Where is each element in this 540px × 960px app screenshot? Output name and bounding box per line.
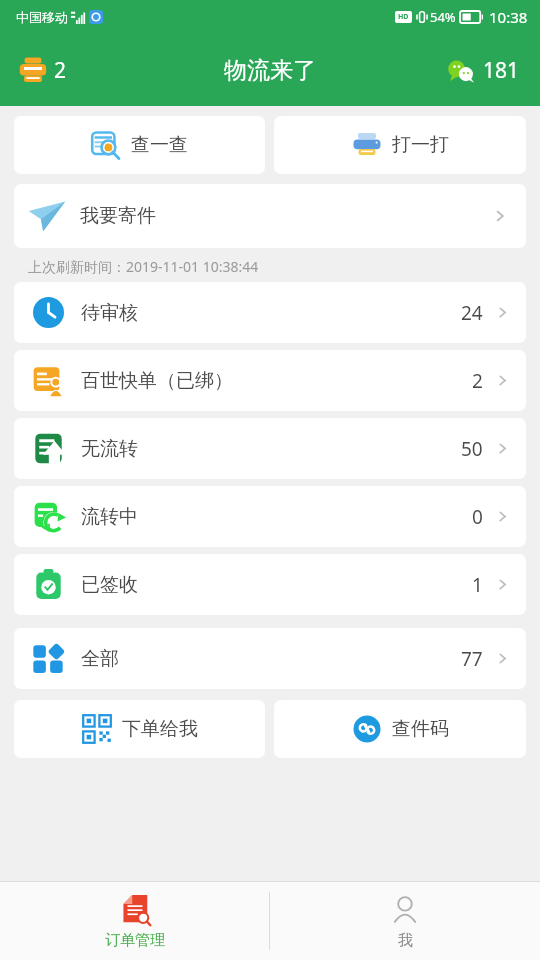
button[interactable]: 订单管理 <box>0 882 269 960</box>
staticText: 2 <box>472 368 483 394</box>
staticText: 54% <box>430 8 456 26</box>
staticText: 打一打 <box>392 133 449 157</box>
staticText: 无流转 <box>81 437 138 461</box>
button[interactable]: 全部 <box>14 628 526 689</box>
staticText: 百世快单（已绑） <box>81 369 233 393</box>
staticText: 待审核 <box>81 301 138 325</box>
staticText: 查件码 <box>392 717 449 741</box>
staticText: 181 <box>483 56 520 85</box>
staticText: 24 <box>461 300 483 326</box>
staticText: 1 <box>472 572 483 598</box>
staticText: 全部 <box>81 647 119 671</box>
staticText: 已签收 <box>81 573 138 597</box>
button[interactable]: 打一打 <box>274 116 526 174</box>
button[interactable]: 我要寄件 <box>14 184 526 248</box>
staticText: 我 <box>398 931 413 950</box>
staticText: 77 <box>461 646 483 672</box>
button[interactable]: 我 <box>270 882 540 960</box>
staticText: 订单管理 <box>105 931 165 950</box>
button[interactable]: 无流转 <box>14 418 526 479</box>
button[interactable]: 查一查 <box>14 116 265 174</box>
button[interactable]: 流转中 <box>14 486 526 547</box>
staticText: 物流来了 <box>224 56 316 85</box>
button[interactable]: 微信 <box>443 52 524 89</box>
staticText: 50 <box>461 436 483 462</box>
button[interactable]: 查件码 <box>274 700 526 758</box>
button[interactable]: 打印机 <box>14 51 71 89</box>
staticText: 我要寄件 <box>80 204 156 228</box>
staticText: 2 <box>54 56 67 85</box>
staticText: 10:38 <box>489 7 528 27</box>
button[interactable]: 下单给我 <box>14 700 265 758</box>
button[interactable]: 已签收 <box>14 554 526 615</box>
staticText: 中国移动 <box>16 9 68 25</box>
button[interactable]: 百世快单（已绑） <box>14 350 526 411</box>
staticText: HD <box>398 12 409 22</box>
staticText: 流转中 <box>81 505 138 529</box>
staticText: 查一查 <box>131 133 188 157</box>
staticText: 上次刷新时间：2019-11-01 10:38:44 <box>28 257 259 276</box>
button[interactable]: 待审核 <box>14 282 526 343</box>
staticText: 下单给我 <box>122 717 198 741</box>
staticText: 0 <box>472 504 483 530</box>
